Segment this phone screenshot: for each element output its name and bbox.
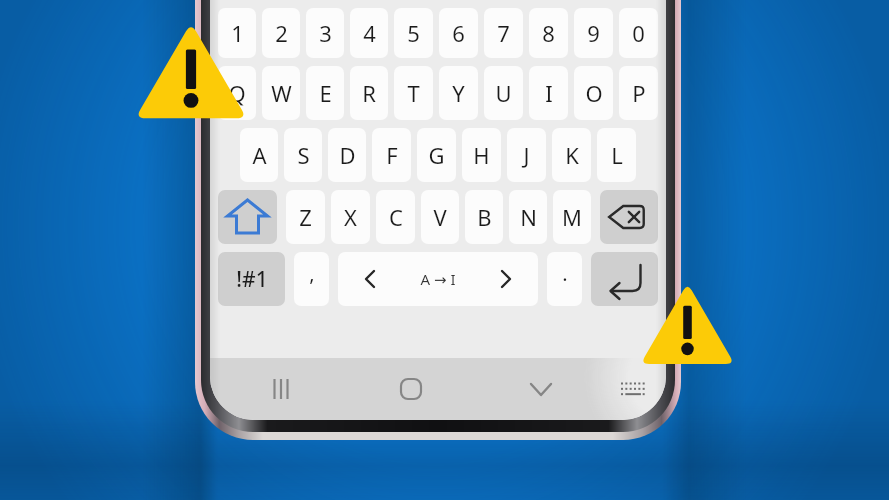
staticText: T xyxy=(407,78,420,108)
button[interactable]: N xyxy=(509,190,547,244)
staticText: 9 xyxy=(587,18,600,48)
button[interactable]: M xyxy=(553,190,591,244)
staticText: 4 xyxy=(363,18,376,48)
button[interactable]: 3 xyxy=(306,8,344,58)
staticText: 6 xyxy=(452,18,465,48)
button[interactable]: I xyxy=(529,66,568,120)
button[interactable]: 6 xyxy=(439,8,478,58)
staticText: 2 xyxy=(275,18,288,48)
button[interactable]: J xyxy=(507,128,546,182)
staticText: W xyxy=(271,78,292,108)
staticText: . xyxy=(562,260,568,287)
button[interactable]: V xyxy=(421,190,459,244)
button[interactable]: Change keyboard xyxy=(606,358,660,420)
button[interactable]: Recents xyxy=(216,358,346,420)
staticText: Z xyxy=(299,202,312,232)
staticText: N xyxy=(520,202,537,232)
staticText: 7 xyxy=(497,18,510,48)
staticText: F xyxy=(386,140,398,170)
button[interactable]: S xyxy=(284,128,322,182)
staticText: 5 xyxy=(407,18,420,48)
staticText: 3 xyxy=(319,18,332,48)
staticText: O xyxy=(585,78,603,108)
staticText: R xyxy=(362,78,376,108)
staticText: 0 xyxy=(632,18,645,48)
button[interactable]: R xyxy=(350,66,388,120)
staticText: E xyxy=(319,78,332,108)
button[interactable]: 5 xyxy=(394,8,433,58)
staticText: U xyxy=(495,78,512,108)
staticText: Q xyxy=(228,78,246,108)
staticText: !#1 xyxy=(236,265,268,294)
button[interactable]: , xyxy=(294,252,329,306)
button[interactable]: O xyxy=(574,66,613,120)
staticText: A → I xyxy=(420,269,456,289)
staticText: B xyxy=(477,202,492,232)
staticText: M xyxy=(562,202,582,232)
button[interactable]: L xyxy=(597,128,636,182)
button[interactable]: W xyxy=(262,66,300,120)
button[interactable]: T xyxy=(394,66,433,120)
staticText: V xyxy=(433,202,447,232)
button[interactable]: Z xyxy=(286,190,325,244)
button[interactable]: D xyxy=(328,128,366,182)
button[interactable]: Y xyxy=(439,66,478,120)
staticText: H xyxy=(473,140,490,170)
staticText: L xyxy=(611,140,623,170)
staticText: A xyxy=(252,140,267,170)
button[interactable]: 2 xyxy=(262,8,300,58)
button[interactable]: 7 xyxy=(484,8,523,58)
button[interactable]: K xyxy=(552,128,591,182)
button[interactable]: 8 xyxy=(529,8,568,58)
staticText: X xyxy=(344,202,357,232)
staticText: , xyxy=(309,260,315,287)
button[interactable]: Shift xyxy=(218,190,277,244)
staticText: C xyxy=(389,202,403,232)
staticText: 8 xyxy=(542,18,555,48)
staticText: Y xyxy=(452,78,465,108)
button[interactable]: P xyxy=(619,66,658,120)
staticText: K xyxy=(565,140,579,170)
button[interactable]: U xyxy=(484,66,523,120)
button[interactable]: G xyxy=(417,128,456,182)
staticText: P xyxy=(632,78,646,108)
button[interactable]: X xyxy=(331,190,370,244)
button[interactable]: 9 xyxy=(574,8,613,58)
staticText: I xyxy=(545,78,553,108)
staticText: J xyxy=(523,140,530,170)
button[interactable]: 4 xyxy=(350,8,388,58)
button[interactable]: A xyxy=(240,128,278,182)
button[interactable]: E xyxy=(306,66,344,120)
button[interactable]: . xyxy=(547,252,582,306)
button[interactable]: 0 xyxy=(619,8,658,58)
button[interactable]: Space xyxy=(338,252,538,306)
button[interactable]: !#1 xyxy=(218,252,285,306)
button[interactable]: Hide keyboard xyxy=(476,358,606,420)
staticText: 1 xyxy=(231,18,244,48)
staticText: S xyxy=(297,140,310,170)
button[interactable]: Q xyxy=(218,66,256,120)
staticText: G xyxy=(428,140,445,170)
button[interactable]: 1 xyxy=(218,8,256,58)
button[interactable]: Backspace xyxy=(600,190,658,244)
button[interactable]: C xyxy=(376,190,415,244)
staticText: D xyxy=(339,140,356,170)
button[interactable]: F xyxy=(372,128,411,182)
button[interactable]: Home xyxy=(346,358,476,420)
button[interactable]: H xyxy=(462,128,501,182)
button[interactable]: Enter xyxy=(591,252,658,306)
button[interactable]: B xyxy=(465,190,503,244)
